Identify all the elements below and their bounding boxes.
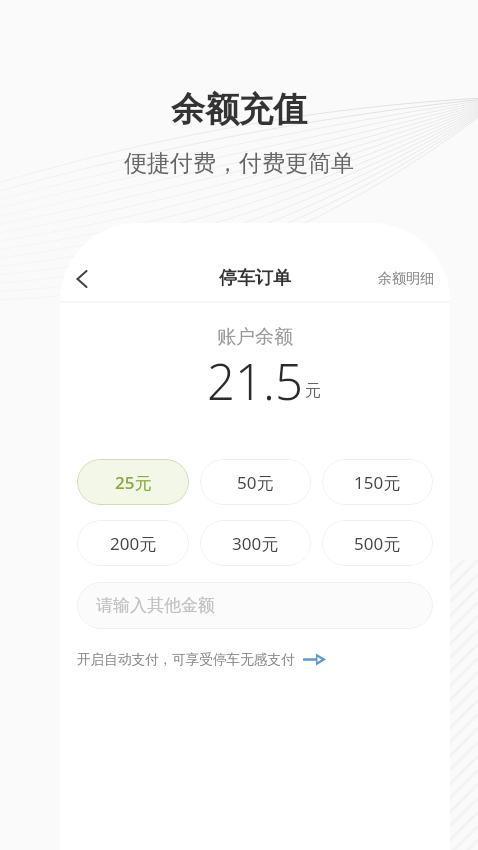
staticText: 余额明细 [378, 270, 434, 288]
staticText: 开启自动支付，可享受停车无感支付 [77, 651, 295, 668]
button[interactable]: 300元 [200, 520, 311, 566]
button[interactable]: 50元 [200, 459, 311, 505]
button[interactable]: 200元 [77, 520, 189, 566]
staticText: 25元 [115, 471, 152, 494]
staticText: 200元 [110, 532, 157, 555]
staticText: 21.5 [207, 348, 303, 415]
button[interactable]: 余额明细 [362, 260, 450, 298]
button[interactable]: 开启自动支付，可享受停车无感支付 [77, 651, 326, 668]
staticText: 150元 [354, 471, 401, 494]
staticText: 余额充值 [171, 88, 307, 131]
staticText: 便捷付费，付费更简单 [124, 149, 354, 178]
staticText: 500元 [354, 532, 401, 555]
button[interactable]: 500元 [322, 520, 433, 566]
staticText: 请输入其他金额 [96, 595, 215, 616]
staticText: 账户余额 [217, 325, 293, 349]
staticText: 元 [305, 381, 321, 401]
staticText: 300元 [232, 532, 279, 555]
staticText: 停车订单 [219, 267, 291, 290]
button[interactable]: 请输入其他金额 [77, 582, 433, 629]
button[interactable]: 25元 [77, 459, 189, 505]
button[interactable]: 150元 [322, 459, 433, 505]
staticText: 50元 [237, 471, 274, 494]
button[interactable]: Back [64, 261, 100, 297]
